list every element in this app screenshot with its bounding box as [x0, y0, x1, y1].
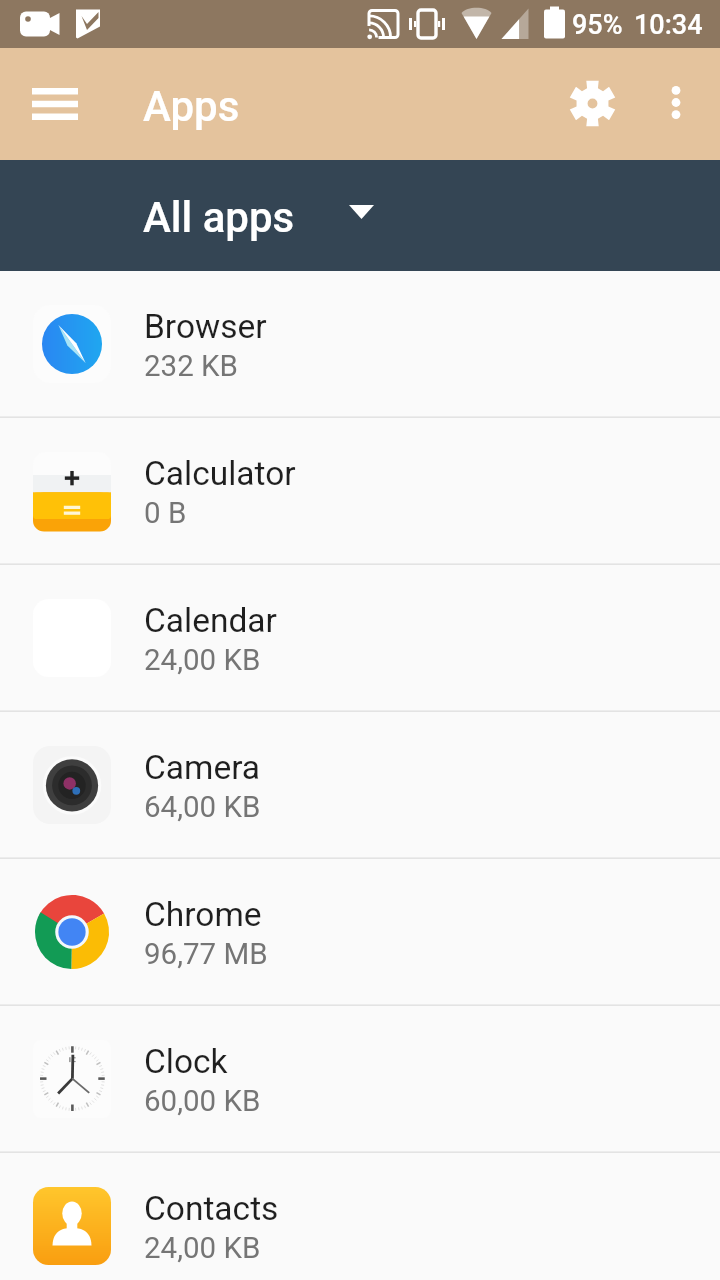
- staticText: Calendar: [144, 601, 277, 640]
- staticText: Contacts: [144, 1189, 279, 1228]
- staticText: 60,00 KB: [144, 1084, 261, 1119]
- staticText: 10:34: [634, 9, 703, 41]
- staticText: 232 KB: [144, 349, 238, 384]
- staticText: 96,77 MB: [144, 937, 268, 972]
- staticText: Chrome: [144, 895, 262, 934]
- button[interactable]: Clock: [0, 1006, 720, 1153]
- staticText: 64,00 KB: [144, 790, 261, 825]
- button[interactable]: Camera: [0, 712, 720, 859]
- staticText: 95%: [572, 9, 623, 41]
- staticText: Browser: [144, 307, 267, 346]
- button[interactable]: Calendar: [0, 565, 720, 712]
- button[interactable]: Chrome: [0, 859, 720, 1006]
- staticText: Apps: [143, 82, 240, 131]
- staticText: 0 B: [144, 496, 187, 531]
- staticText: Camera: [144, 748, 261, 787]
- staticText: 24,00 KB: [144, 643, 261, 678]
- staticText: Clock: [144, 1042, 228, 1081]
- button[interactable]: Open navigation drawer: [15, 64, 95, 144]
- staticText: 24,00 KB: [144, 1231, 261, 1266]
- button[interactable]: Browser: [0, 271, 720, 418]
- staticText: All apps: [143, 193, 295, 242]
- button[interactable]: Calculator: [0, 418, 720, 565]
- staticText: Calculator: [144, 454, 296, 493]
- button[interactable]: Contacts: [0, 1153, 720, 1280]
- button[interactable]: More options: [644, 70, 708, 134]
- button[interactable]: All apps: [128, 176, 390, 256]
- button[interactable]: Settings: [551, 62, 633, 144]
